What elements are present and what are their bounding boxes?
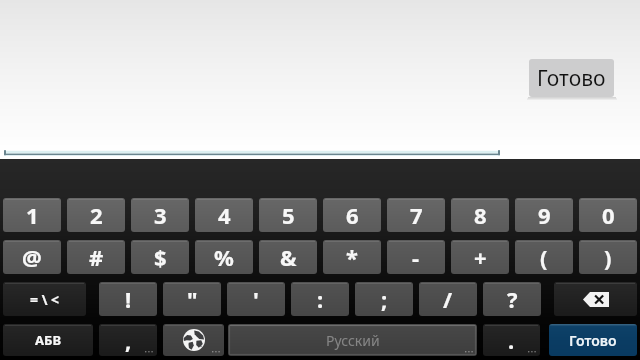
staticText: ( (540, 242, 548, 272)
button[interactable]: 1 (3, 198, 61, 232)
button[interactable]: % (195, 240, 253, 274)
button[interactable]: Delete (554, 282, 637, 316)
button[interactable]: : (291, 282, 349, 316)
button[interactable]: ? (483, 282, 541, 316)
button[interactable]: " (163, 282, 221, 316)
button[interactable]: 0 (579, 198, 637, 232)
staticText: , (125, 325, 132, 355)
staticText: 9 (538, 200, 551, 230)
staticText: * (346, 242, 358, 272)
staticText: 1 (26, 200, 39, 230)
staticText: $ (154, 242, 167, 272)
staticText: Русский (326, 331, 380, 350)
button[interactable]: 7 (387, 198, 445, 232)
staticText: ; (381, 284, 388, 314)
button[interactable]: * (323, 240, 381, 274)
button[interactable]: ; (355, 282, 413, 316)
staticText: + (474, 242, 487, 272)
staticText: . (508, 325, 515, 355)
staticText: 0 (602, 200, 615, 230)
staticText: = \ < (30, 290, 60, 309)
staticText: " (187, 284, 198, 314)
button[interactable]: Русский (228, 324, 477, 356)
staticText: 4 (218, 200, 231, 230)
staticText: # (89, 242, 104, 272)
staticText: Готово (569, 331, 617, 350)
button[interactable]: Готово (549, 324, 637, 356)
button[interactable]: + (451, 240, 509, 274)
staticText: ' (253, 284, 259, 314)
staticText: 7 (410, 200, 423, 230)
button[interactable]: = \ < (3, 282, 86, 316)
button[interactable]: 4 (195, 198, 253, 232)
staticText: % (214, 242, 234, 272)
button[interactable]: ( (515, 240, 573, 274)
staticText: 5 (282, 200, 295, 230)
button[interactable]: 9 (515, 198, 573, 232)
button[interactable]: 2 (67, 198, 125, 232)
button[interactable]: $ (131, 240, 189, 274)
staticText: ) (604, 242, 612, 272)
button[interactable]: Готово (529, 59, 614, 97)
staticText: & (280, 242, 297, 272)
staticText: ! (125, 284, 132, 314)
button[interactable]: , (99, 324, 157, 356)
button[interactable]: 6 (323, 198, 381, 232)
button[interactable]: / (419, 282, 477, 316)
button[interactable]: АБВ (3, 324, 93, 356)
button[interactable]: . (483, 324, 540, 356)
staticText: 8 (474, 200, 487, 230)
button[interactable]: ' (227, 282, 285, 316)
staticText: ? (507, 284, 518, 314)
button[interactable]: # (67, 240, 125, 274)
staticText: @ (22, 242, 42, 272)
button[interactable]: - (387, 240, 445, 274)
button[interactable]: ! (99, 282, 157, 316)
button[interactable]: 5 (259, 198, 317, 232)
staticText: 2 (90, 200, 103, 230)
button[interactable]: 3 (131, 198, 189, 232)
button[interactable]: 8 (451, 198, 509, 232)
staticText: АБВ (35, 331, 62, 349)
staticText: 3 (154, 200, 167, 230)
staticText: / (443, 284, 453, 314)
button[interactable]: ) (579, 240, 637, 274)
staticText: - (412, 242, 420, 272)
staticText: : (317, 284, 324, 314)
button[interactable]: @ (3, 240, 61, 274)
button[interactable]: Change keyboard language (163, 324, 224, 356)
staticText: Готово (537, 64, 606, 93)
staticText: 6 (346, 200, 359, 230)
button[interactable]: & (259, 240, 317, 274)
